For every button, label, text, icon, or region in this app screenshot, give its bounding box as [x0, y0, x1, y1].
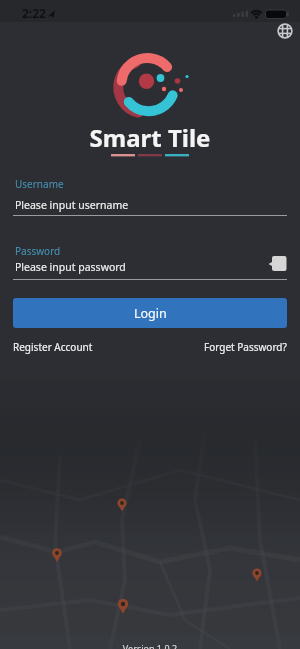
staticText: Please input password [15, 260, 126, 274]
button[interactable] [271, 17, 298, 44]
button[interactable]: Register Account [13, 338, 123, 356]
staticText: Register Account [13, 340, 93, 354]
staticText: Forget Password? [204, 340, 287, 354]
staticText: Login [134, 305, 167, 322]
staticText: Version 1.0.2 [0, 642, 300, 649]
staticText: 2:22 [22, 5, 46, 21]
staticText: Please input username [15, 198, 129, 212]
staticText: Username [15, 177, 64, 191]
staticText: Smart Tile [0, 121, 300, 151]
button[interactable]: Forget Password? [177, 338, 287, 356]
staticText: Password [15, 244, 61, 258]
button[interactable] [264, 250, 292, 276]
button[interactable]: Login [13, 298, 287, 328]
